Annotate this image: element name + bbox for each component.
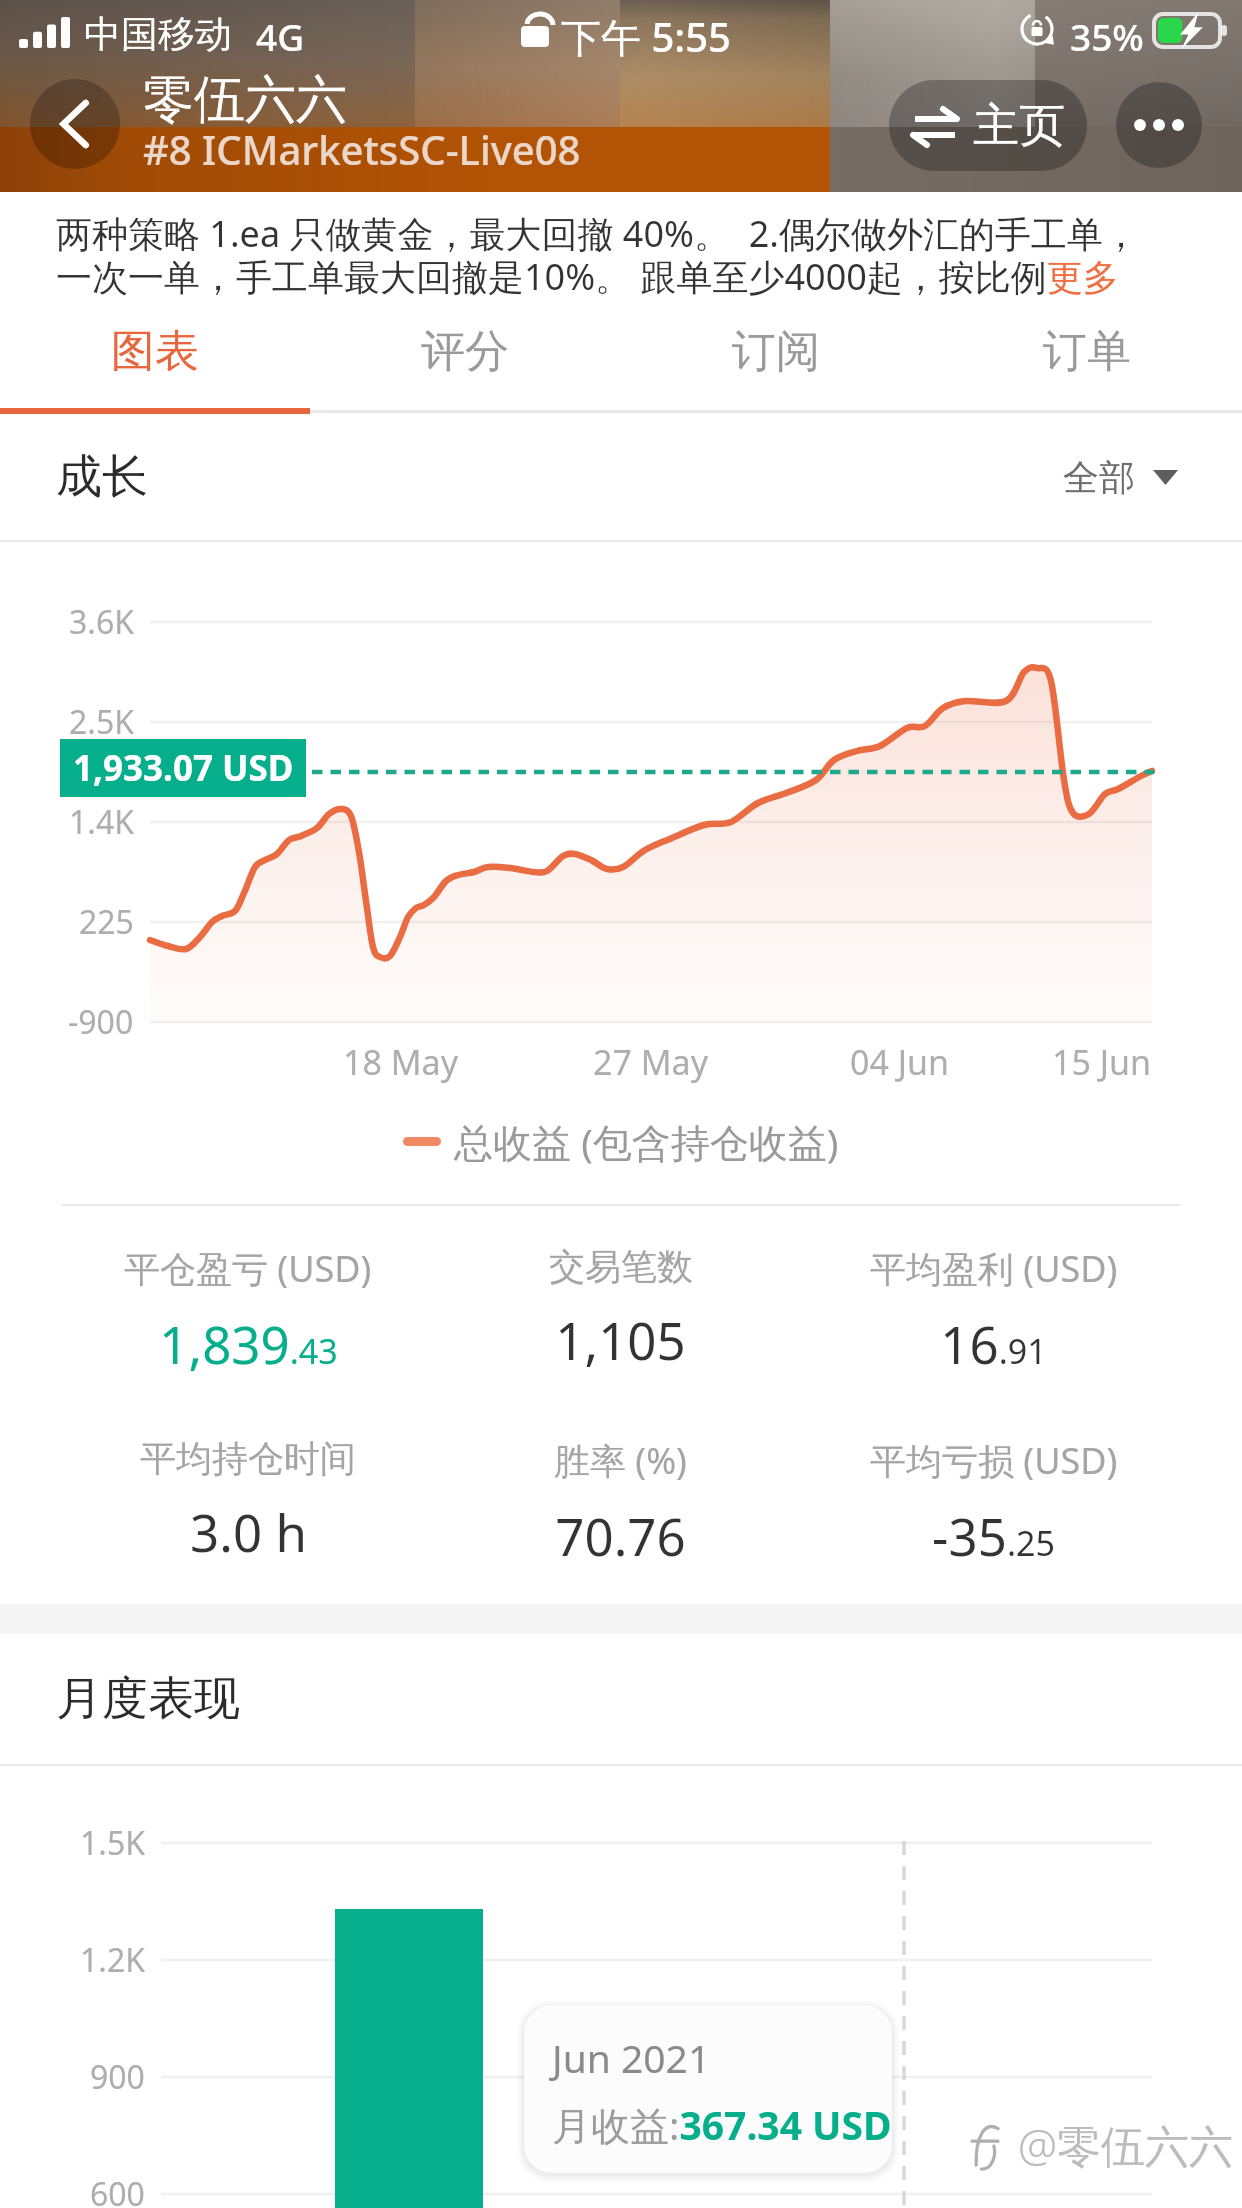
button[interactable]: 评分 [310,324,620,379]
staticText: 月度表现 [56,1670,240,1728]
staticText: 18 May [343,1039,458,1085]
staticText: 16.91 [940,1309,1047,1378]
staticText: 4G [256,11,305,61]
staticText: 1.5K [80,1821,145,1865]
button[interactable]: 两种策略 1.ea 只做黄金，最大回撤 40%。 2.偶尔做外汇的手工单， 一次… [0,209,1242,301]
staticText: 月收益:367.34 USD [552,2098,892,2151]
staticText: 中国移动 [84,11,232,58]
staticText: 胜率 (%) [554,1436,687,1485]
staticText: 订单 [1043,324,1131,379]
staticText: 主页 [973,97,1065,155]
staticText: 1,105 [555,1305,686,1374]
staticText: 3.0 h [190,1497,307,1566]
staticText: 订阅 [732,324,820,379]
staticText: 全部 [1063,455,1135,500]
staticText: 平均盈利 (USD) [870,1244,1118,1293]
staticText: 总收益 (包含持仓收益) [454,1115,839,1168]
staticText: 平仓盈亏 (USD) [124,1244,372,1293]
staticText: 成长 [56,448,148,506]
staticText: 交易笔数 [549,1244,693,1289]
button[interactable]: 全部 [1055,447,1186,508]
staticText: 平均亏损 (USD) [870,1436,1118,1485]
staticText: 35% [1070,11,1144,61]
staticText: 225 [79,900,134,944]
staticText: 600 [90,2172,145,2208]
staticText: 评分 [421,324,509,379]
staticText: 3.6K [69,600,134,644]
staticText: 1.2K [80,1938,145,1982]
staticText: -35.25 [932,1501,1055,1570]
staticText: 04 Jun [850,1039,950,1085]
button[interactable]: 订单 [931,324,1242,379]
button[interactable]: 图表 [0,324,310,379]
staticText: #8 ICMarketsSC-Live08 [143,122,581,176]
staticText: 零伍六六 [143,68,347,132]
button[interactable]: Back [30,79,120,169]
staticText: 1,933.07 USD [73,744,294,792]
staticText: @零伍六六 [1018,2115,1234,2175]
button[interactable]: 订阅 [620,324,931,379]
staticText: 15 Jun [1052,1039,1152,1085]
button[interactable]: 主页 [889,80,1087,171]
staticText: -900 [68,1000,134,1044]
staticText: Jun 2021 [552,2031,711,2084]
staticText: 900 [90,2055,145,2099]
staticText: 1,839.43 [159,1309,338,1378]
staticText: 两种策略 1.ea 只做黄金，最大回撤 40%。 2.偶尔做外汇的手工单， 一次… [56,209,1139,301]
staticText: 2.5K [69,700,134,744]
staticText: 平均持仓时间 [140,1436,356,1481]
staticText: 下午 5:55 [561,9,731,64]
staticText: 1.4K [69,800,134,844]
staticText: 27 May [593,1039,708,1085]
staticText: 图表 [111,324,199,379]
staticText: 70.76 [555,1501,686,1570]
button[interactable]: More options [1116,82,1202,168]
